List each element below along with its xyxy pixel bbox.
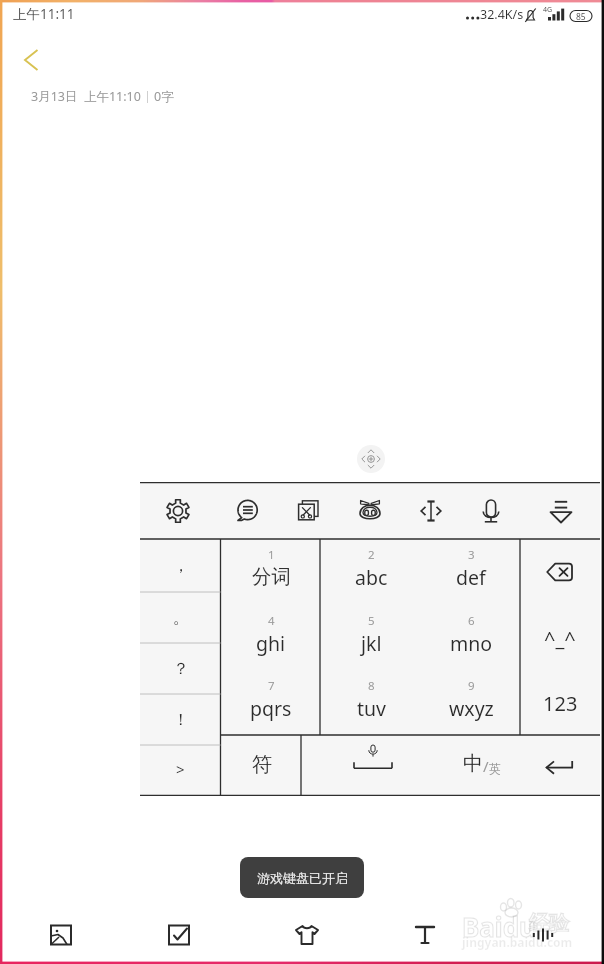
button[interactable]: Insert image <box>33 908 89 962</box>
button[interactable]: ！ <box>140 694 221 745</box>
button[interactable]: 符 <box>221 735 302 793</box>
staticText: 8 <box>368 678 375 694</box>
button[interactable]: Settings <box>152 484 204 537</box>
staticText: ！ <box>173 710 189 730</box>
staticText: jkl <box>361 630 382 657</box>
button[interactable]: 7 <box>221 670 321 736</box>
staticText: ghi <box>256 630 286 657</box>
button[interactable]: 2 <box>321 539 421 605</box>
button[interactable]: 游戏键盘已开启 <box>240 857 364 898</box>
button[interactable]: Back <box>12 38 52 78</box>
staticText: abc <box>355 564 388 591</box>
button[interactable]: 123 <box>520 670 600 736</box>
staticText: 分词 <box>252 564 291 589</box>
button[interactable]: Voice input <box>515 908 571 962</box>
staticText: 6 <box>468 613 475 629</box>
staticText: mno <box>450 630 493 657</box>
staticText: 9 <box>468 678 475 694</box>
staticText: / <box>483 756 489 776</box>
staticText: 游戏键盘已开启 <box>257 870 348 886</box>
button[interactable]: 5 <box>321 605 421 671</box>
button[interactable]: 3 <box>421 539 521 605</box>
button[interactable]: 8 <box>321 670 421 736</box>
button[interactable]: 。 <box>140 592 221 643</box>
staticText: ， <box>173 556 189 576</box>
staticText: 3 <box>468 547 475 563</box>
button[interactable]: 9 <box>421 670 521 736</box>
button[interactable]: Messages <box>221 484 273 537</box>
button[interactable]: 6 <box>421 605 521 671</box>
staticText: ？ <box>173 659 189 679</box>
staticText: 123 <box>543 690 578 717</box>
button[interactable]: > <box>140 745 221 793</box>
button[interactable]: Clipboard <box>282 484 334 537</box>
staticText: 英 <box>489 761 501 776</box>
staticText: 7 <box>268 678 275 694</box>
staticText: 中 <box>463 751 483 776</box>
staticText: jingyan.baidu.com <box>462 934 573 950</box>
staticText: 4 <box>268 613 275 629</box>
button[interactable]: Collapse <box>535 484 587 537</box>
staticText: 1 <box>268 547 275 563</box>
staticText: 符 <box>252 752 272 777</box>
staticText: ^_^ <box>544 625 576 652</box>
button[interactable]: ， <box>140 539 221 592</box>
button[interactable]: Enter <box>520 735 600 793</box>
button[interactable]: Checklist <box>151 908 207 962</box>
button[interactable]: Move keyboard <box>357 445 385 473</box>
staticText: 32.4K/s <box>480 6 524 23</box>
staticText: 2 <box>368 547 375 563</box>
button[interactable]: Space <box>301 735 445 793</box>
staticText: wxyz <box>449 695 494 722</box>
button[interactable]: Text format <box>397 908 453 962</box>
staticText: 4G <box>543 5 553 15</box>
button[interactable]: ？ <box>140 643 221 694</box>
button[interactable]: ^_^ <box>520 605 600 671</box>
staticText: 5 <box>368 613 375 629</box>
button[interactable]: Theme <box>279 908 335 962</box>
staticText: 上午11:11 <box>13 5 75 23</box>
button[interactable]: Voice <box>465 484 517 537</box>
button[interactable]: 4 <box>221 605 321 671</box>
button[interactable]: 1 <box>221 539 321 605</box>
staticText: pqrs <box>250 695 292 722</box>
button[interactable]: 中 <box>445 735 519 793</box>
staticText: tuv <box>357 695 386 722</box>
button[interactable]: Backspace <box>520 539 600 605</box>
staticText: Baidu <box>462 909 536 944</box>
staticText: > <box>176 759 185 779</box>
staticText: def <box>456 564 486 591</box>
button[interactable]: Cursor <box>405 484 457 537</box>
staticText: 。 <box>173 608 189 628</box>
staticText: 经验 <box>529 911 569 936</box>
staticText: 0字 <box>154 88 174 105</box>
staticText: 3月13日 上午11:10 <box>31 88 141 105</box>
staticText: 85 <box>576 11 586 23</box>
button[interactable]: Emoji <box>344 484 396 537</box>
